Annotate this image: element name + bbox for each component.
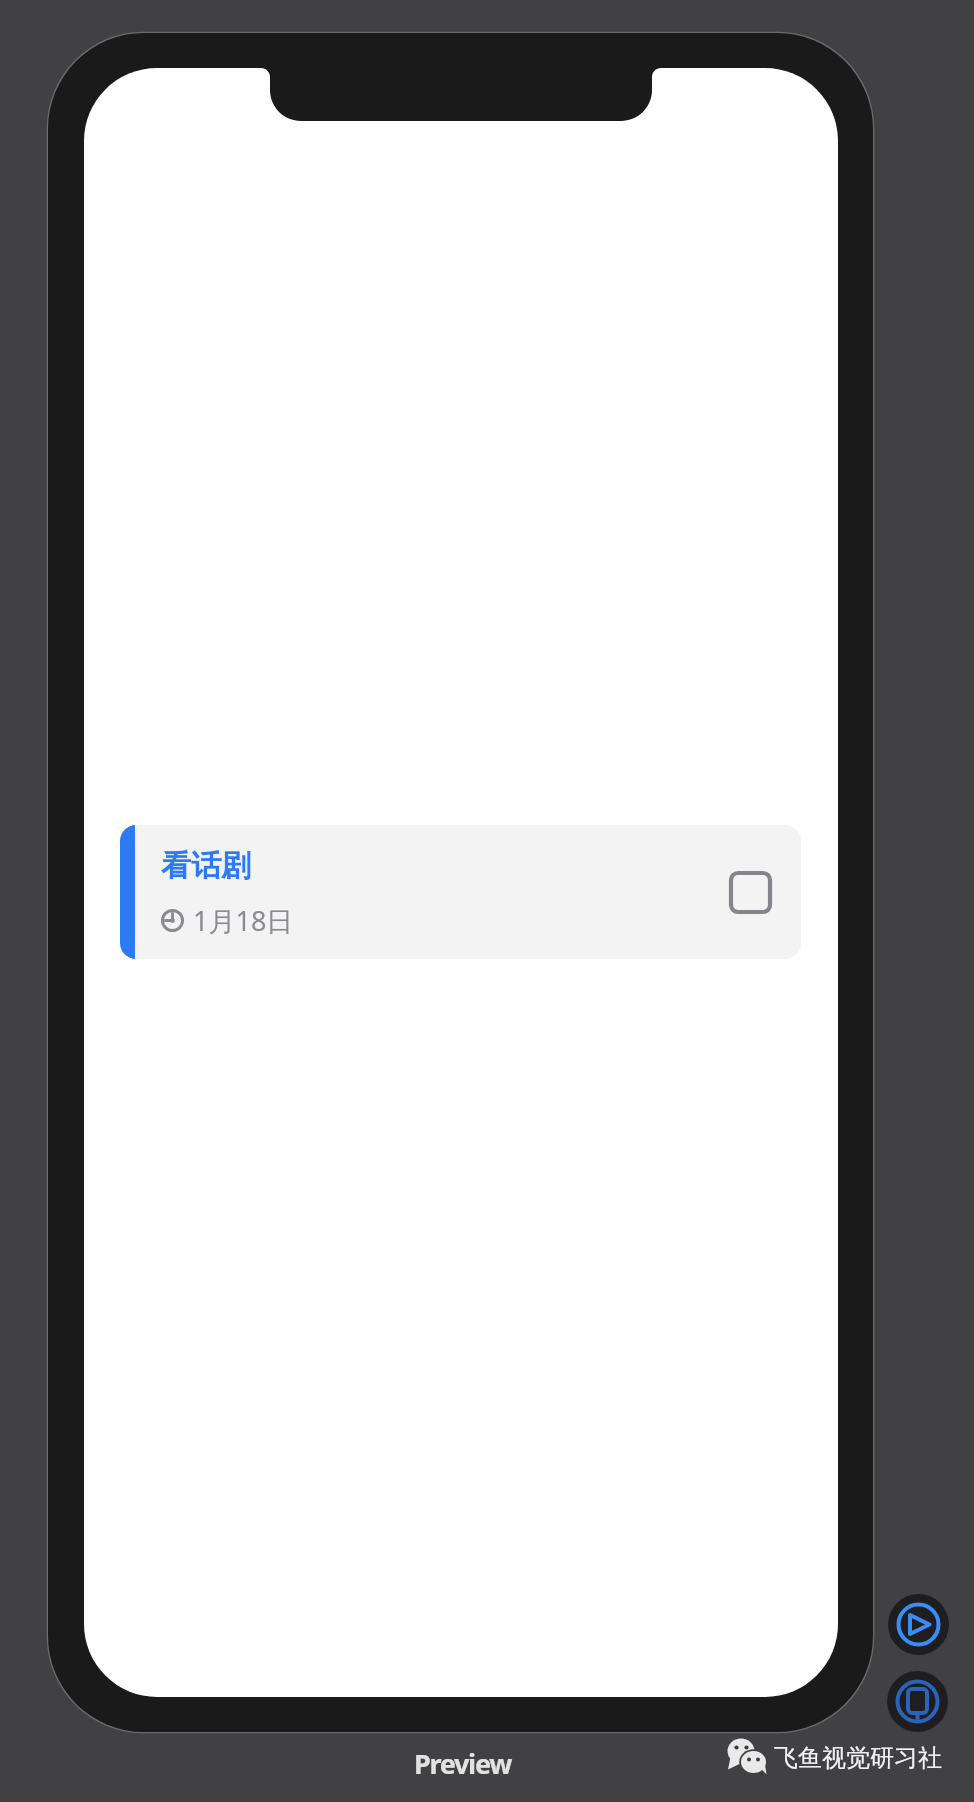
staticText: Preview (414, 1745, 511, 1782)
staticText: 1月18日 (193, 902, 294, 939)
button[interactable]: Play preview (888, 1594, 949, 1655)
button[interactable]: 看话剧 (120, 825, 801, 959)
button[interactable]: Mark task complete (727, 869, 774, 916)
button[interactable]: Switch device frame (887, 1671, 948, 1732)
staticText: 飞鱼视觉研习社 (774, 1743, 942, 1773)
staticText: 看话剧 (161, 847, 251, 885)
